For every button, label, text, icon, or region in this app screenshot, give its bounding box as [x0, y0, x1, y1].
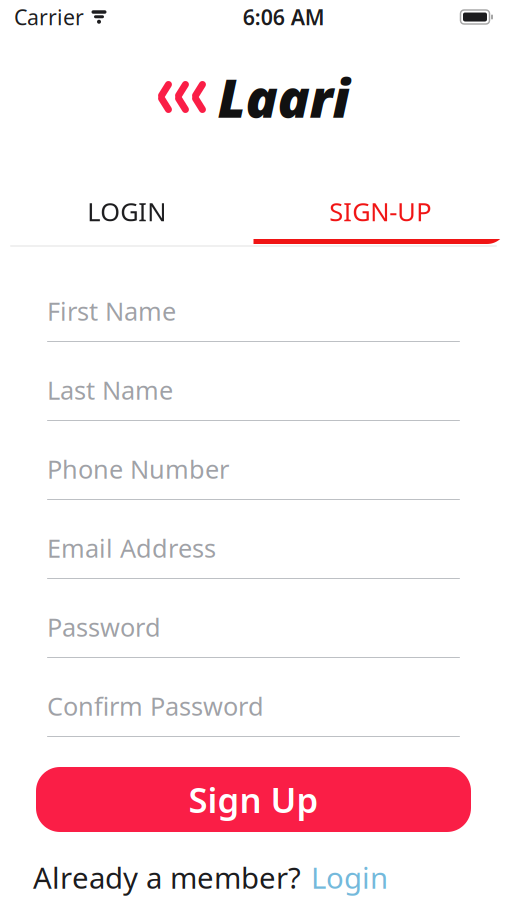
staticText: Already a member? — [33, 858, 301, 897]
staticText: Confirm Password — [47, 689, 264, 723]
staticText: Login — [311, 858, 388, 897]
button[interactable]: Sign Up — [36, 767, 471, 832]
staticText: Email Address — [47, 531, 216, 565]
staticText: LOGIN — [87, 195, 166, 228]
button[interactable]: LOGIN — [0, 184, 253, 244]
staticText: Sign Up — [188, 776, 318, 822]
staticText: Last Name — [47, 373, 173, 407]
staticText: Carrier — [14, 3, 84, 31]
button[interactable]: Login — [311, 858, 388, 897]
staticText: Password — [47, 610, 161, 644]
button[interactable]: SIGN-UP — [253, 184, 507, 244]
staticText: First Name — [47, 294, 176, 328]
staticText: 6:06 AM — [243, 3, 325, 31]
staticText: Phone Number — [47, 452, 229, 486]
staticText: SIGN-UP — [329, 195, 431, 228]
staticText: Laari — [217, 62, 349, 132]
